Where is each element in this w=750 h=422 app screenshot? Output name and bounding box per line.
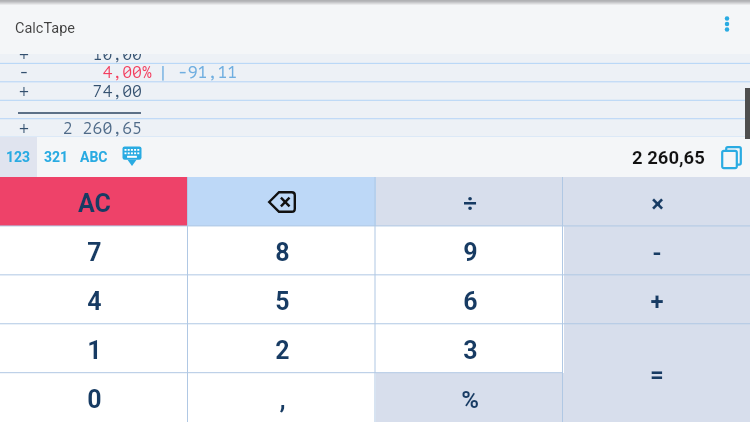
staticText: × — [651, 190, 664, 218]
button[interactable]: More options — [702, 5, 750, 54]
button[interactable]: + — [0, 45, 750, 63]
staticText: CalcTape — [15, 20, 76, 37]
staticText: 2 260,65 — [62, 119, 142, 137]
staticText: ABC — [80, 149, 108, 165]
staticText: = — [650, 361, 664, 389]
button[interactable]: 321 — [37, 137, 75, 177]
staticText: AC — [78, 189, 111, 218]
button[interactable]: + — [564, 275, 750, 324]
button[interactable]: 1 — [0, 324, 188, 373]
staticText: - — [652, 239, 662, 267]
button[interactable]: 123 — [0, 137, 37, 177]
button[interactable]: - — [564, 226, 750, 275]
staticText: 10,00 — [92, 45, 142, 63]
staticText: 4 — [87, 287, 102, 316]
button[interactable]: 4 — [0, 275, 188, 324]
staticText: + — [19, 82, 29, 100]
button[interactable]: % — [376, 373, 564, 422]
button[interactable]: , — [188, 373, 376, 422]
staticText: + — [19, 45, 29, 63]
button[interactable]: AC — [0, 177, 188, 226]
staticText: 74,00 — [92, 82, 142, 100]
button[interactable]: 9 — [376, 226, 564, 275]
staticText: , — [279, 385, 286, 414]
staticText: - — [19, 63, 29, 81]
staticText: 5 — [275, 287, 290, 316]
button[interactable]: 5 — [188, 275, 376, 324]
button[interactable]: Show keyboard — [113, 137, 151, 177]
staticText: 7 — [87, 238, 102, 267]
button[interactable]: 0 — [0, 373, 188, 422]
staticText: 1 — [87, 336, 102, 365]
staticText: 123 — [6, 149, 31, 165]
staticText: 0 — [87, 385, 102, 414]
button[interactable]: - — [0, 63, 750, 81]
staticText: 9 — [463, 238, 478, 267]
staticText: + — [19, 119, 29, 137]
staticText: 321 — [44, 149, 69, 165]
staticText: 6 — [463, 287, 478, 316]
staticText: 2 — [275, 336, 290, 365]
button[interactable]: + — [0, 82, 750, 100]
button[interactable]: 7 — [0, 226, 188, 275]
button[interactable]: ABC — [75, 137, 113, 177]
staticText: 4,00 — [102, 63, 142, 81]
button[interactable]: + — [0, 119, 750, 137]
button[interactable]: Backspace — [188, 177, 376, 226]
staticText: | -91,11 — [158, 63, 238, 81]
button[interactable]: × — [564, 177, 750, 226]
button[interactable]: Copy result — [717, 138, 747, 178]
button[interactable]: ÷ — [376, 177, 564, 226]
staticText: ÷ — [463, 190, 477, 218]
button[interactable]: 8 — [188, 226, 376, 275]
staticText: 2 260,65 — [632, 147, 705, 169]
staticText: 3 — [463, 336, 478, 365]
button[interactable]: 2 — [188, 324, 376, 373]
staticText: 8 — [275, 238, 290, 267]
button[interactable]: 3 — [376, 324, 564, 373]
staticText: % — [142, 63, 152, 81]
button[interactable]: 6 — [376, 275, 564, 324]
staticText: % — [461, 386, 479, 414]
staticText: + — [650, 288, 664, 316]
button[interactable]: = — [564, 324, 750, 422]
